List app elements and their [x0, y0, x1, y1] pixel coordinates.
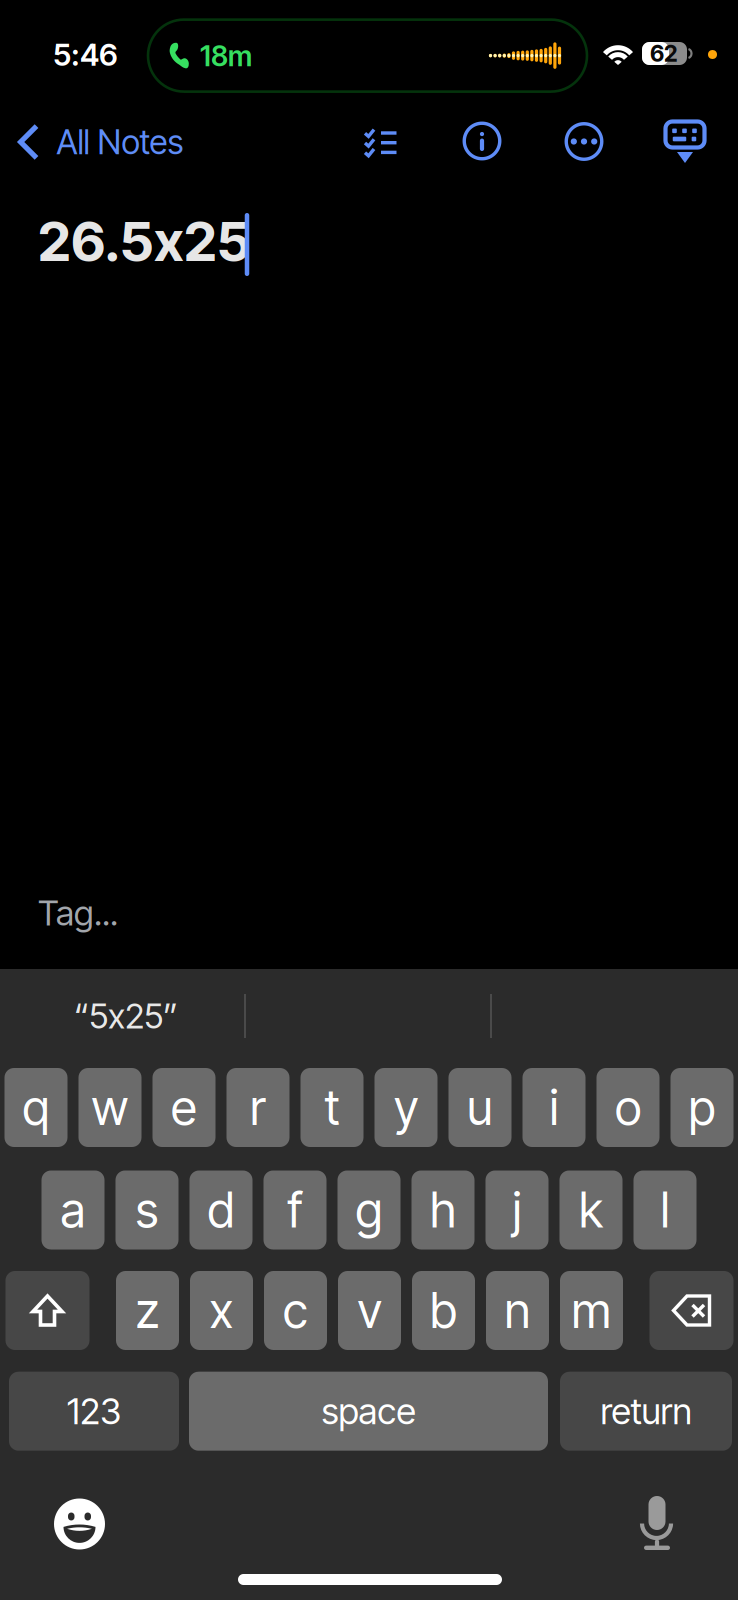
- staticText: 123: [67, 1389, 121, 1433]
- staticText: h: [430, 1181, 456, 1239]
- staticText: y: [394, 1078, 418, 1137]
- staticText: r: [250, 1078, 266, 1137]
- button[interactable]: g: [337, 1170, 400, 1249]
- button[interactable]: Shift: [5, 1271, 89, 1350]
- button[interactable]: e: [152, 1068, 215, 1147]
- button[interactable]: return: [560, 1372, 732, 1451]
- staticText: w: [91, 1078, 128, 1137]
- staticText: space: [321, 1389, 415, 1433]
- button[interactable]: All Notes: [18, 116, 200, 168]
- button[interactable]: “5x25”: [11, 986, 241, 1046]
- button[interactable]: o: [596, 1068, 659, 1147]
- button[interactable]: p: [670, 1068, 733, 1147]
- button[interactable]: c: [264, 1271, 327, 1350]
- staticText: o: [615, 1078, 641, 1137]
- staticText: d: [207, 1181, 234, 1239]
- staticText: p: [688, 1078, 715, 1137]
- staticText: j: [512, 1181, 521, 1239]
- button[interactable]: z: [116, 1271, 179, 1350]
- staticText: t: [324, 1078, 339, 1137]
- staticText: “5x25”: [74, 995, 178, 1037]
- button[interactable]: s: [115, 1170, 178, 1249]
- staticText: return: [600, 1389, 691, 1433]
- button[interactable]: d: [189, 1170, 252, 1249]
- staticText: 62: [650, 40, 678, 67]
- button[interactable]: i: [522, 1068, 585, 1147]
- button[interactable]: m: [560, 1271, 623, 1350]
- button[interactable]: n: [486, 1271, 549, 1350]
- button[interactable]: Dictation: [625, 1490, 689, 1554]
- button[interactable]: More: [561, 118, 607, 164]
- button[interactable]: Delete: [649, 1271, 733, 1350]
- staticText: u: [467, 1078, 493, 1137]
- button[interactable]: r: [226, 1068, 289, 1147]
- staticText: a: [60, 1181, 85, 1239]
- button[interactable]: k: [559, 1170, 622, 1249]
- button[interactable]: Tag...: [38, 888, 238, 938]
- staticText: i: [549, 1078, 558, 1137]
- staticText: f: [287, 1181, 302, 1239]
- staticText: l: [660, 1181, 669, 1239]
- button[interactable]: q: [4, 1068, 67, 1147]
- staticText: m: [571, 1281, 611, 1340]
- button[interactable]: 123: [9, 1372, 179, 1451]
- staticText: v: [357, 1281, 381, 1340]
- staticText: s: [135, 1181, 158, 1239]
- button[interactable]: a: [41, 1170, 104, 1249]
- button[interactable]: j: [485, 1170, 548, 1249]
- staticText: 26.5x25: [38, 208, 251, 274]
- staticText: k: [579, 1181, 603, 1239]
- staticText: 5:46: [53, 36, 118, 73]
- button[interactable]: Hide Keyboard: [662, 117, 708, 163]
- button[interactable]: Checklist: [358, 118, 404, 164]
- button[interactable]: t: [300, 1068, 363, 1147]
- button[interactable]: w: [78, 1068, 141, 1147]
- staticText: q: [22, 1078, 49, 1137]
- staticText: e: [171, 1078, 197, 1137]
- staticText: n: [504, 1281, 530, 1340]
- staticText: z: [135, 1281, 159, 1340]
- button[interactable]: b: [412, 1271, 475, 1350]
- button[interactable]: v: [338, 1271, 401, 1350]
- button[interactable]: l: [633, 1170, 696, 1249]
- staticText: c: [283, 1281, 308, 1340]
- button[interactable]: Emoji: [47, 1492, 111, 1556]
- button[interactable]: f: [263, 1170, 326, 1249]
- button[interactable]: x: [190, 1271, 253, 1350]
- staticText: All Notes: [56, 122, 183, 162]
- staticText: Tag...: [38, 892, 118, 934]
- staticText: 18m: [200, 39, 252, 73]
- staticText: b: [430, 1281, 457, 1340]
- button[interactable]: h: [411, 1170, 474, 1249]
- button[interactable]: space: [189, 1372, 548, 1451]
- staticText: g: [355, 1181, 382, 1239]
- button[interactable]: u: [448, 1068, 511, 1147]
- button[interactable]: y: [374, 1068, 437, 1147]
- staticText: x: [209, 1281, 233, 1340]
- button[interactable]: Info: [459, 118, 505, 164]
